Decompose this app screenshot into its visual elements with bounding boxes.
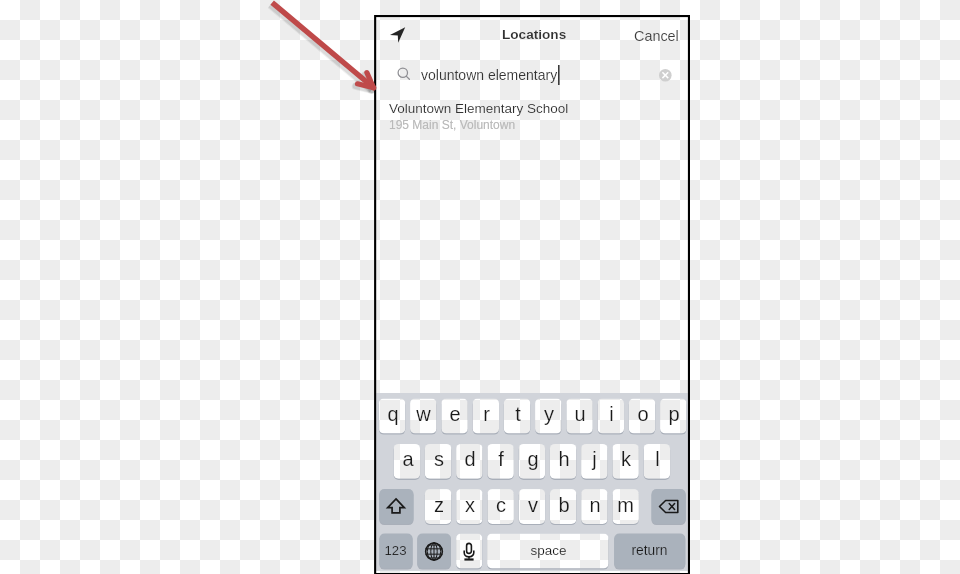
button[interactable]: w [410,396,437,431]
button[interactable]: Switch keyboard [417,534,451,569]
button[interactable]: space [487,533,609,568]
staticText: r [483,403,490,425]
staticText: return [631,543,668,558]
button[interactable]: d [456,441,483,476]
button[interactable]: b [550,487,577,522]
staticText: d [464,448,476,470]
button[interactable]: Backspace [652,489,686,524]
button[interactable]: c [487,487,514,522]
staticText: Locations [502,27,567,42]
staticText: Voluntown Elementary School [389,101,569,116]
staticText: g [527,448,539,470]
staticText: space [530,543,567,558]
button[interactable]: p [660,396,687,431]
staticText: Cancel [634,28,679,44]
staticText: k [621,448,631,470]
button[interactable]: return [614,533,685,568]
button[interactable]: v [519,487,546,522]
button[interactable]: u [566,396,593,431]
staticText: v [528,494,538,516]
staticText: q [387,403,399,425]
button[interactable]: r [473,396,500,431]
button[interactable]: n [581,487,608,522]
staticText: m [617,494,634,516]
button[interactable]: o [629,396,656,431]
staticText: n [589,494,601,516]
button[interactable]: q [379,396,406,431]
button[interactable]: Cancel [628,25,684,46]
button[interactable]: l [644,441,671,476]
button[interactable]: s [425,441,452,476]
staticText: l [655,448,660,470]
staticText: p [668,403,680,425]
staticText: u [574,403,586,425]
staticText: b [558,494,570,516]
staticText: 123 [384,543,407,558]
button[interactable]: g [519,441,546,476]
staticText: e [449,403,461,425]
button[interactable]: t [504,396,531,431]
staticText: voluntown elementary [421,67,558,83]
staticText: t [515,403,521,425]
staticText: o [637,403,649,425]
staticText: f [498,448,504,470]
staticText: j [592,448,597,470]
staticText: a [402,448,414,470]
staticText: s [434,448,444,470]
button[interactable]: f [487,441,514,476]
staticText: c [496,494,506,516]
button[interactable]: a [394,441,421,476]
button[interactable]: z [425,487,452,522]
button[interactable]: i [598,396,625,431]
staticText: x [465,494,475,516]
button[interactable]: Dictate [456,534,482,569]
staticText: w [416,403,431,425]
button[interactable]: Current location [388,26,408,46]
staticText: z [434,494,444,516]
button[interactable]: e [441,396,468,431]
button[interactable]: 123 [379,533,412,568]
staticText: h [558,448,570,470]
button[interactable]: k [612,441,639,476]
button[interactable]: Voluntown Elementary School [389,99,684,131]
button[interactable]: j [581,441,608,476]
button[interactable]: m [612,487,639,522]
button[interactable]: x [456,487,483,522]
staticText: y [544,403,554,425]
button[interactable]: h [550,441,577,476]
button[interactable]: Shift [379,489,413,524]
staticText: i [609,403,614,425]
staticText: 195 Main St, Voluntown [389,118,516,131]
button[interactable]: y [535,396,562,431]
button[interactable]: Clear text [658,68,673,83]
